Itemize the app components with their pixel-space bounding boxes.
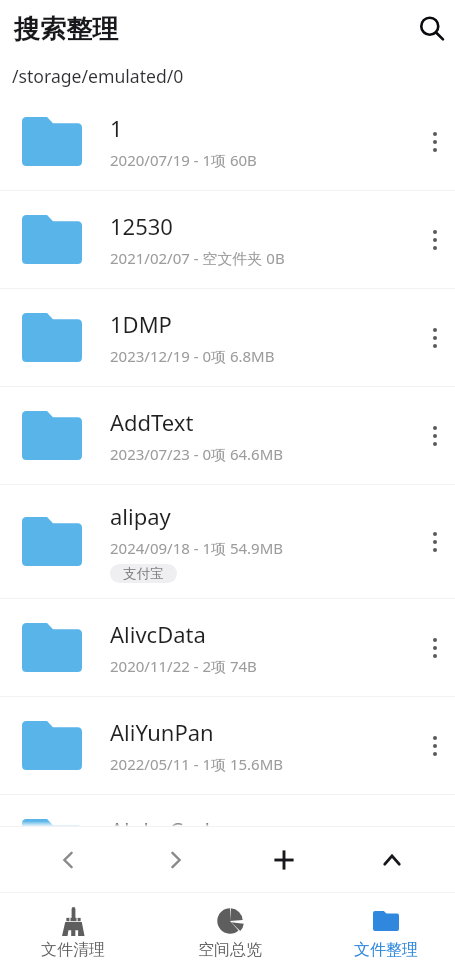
staticText: AddText xyxy=(110,407,194,437)
button[interactable]: 1DMP xyxy=(0,289,455,387)
button[interactable]: More options xyxy=(415,387,455,484)
button[interactable]: alipay xyxy=(0,485,455,599)
button[interactable]: Forward xyxy=(122,827,230,893)
staticText: 12530 xyxy=(110,211,173,241)
button[interactable]: More options xyxy=(415,485,455,598)
staticText: 2020/07/19 - 1项 60B xyxy=(110,150,257,170)
staticText: 文件清理 xyxy=(41,940,105,960)
button[interactable]: More options xyxy=(415,599,455,696)
staticText: 2023/07/23 - 0项 64.6MB xyxy=(110,444,284,464)
staticText: 2024/09/18 - 1项 54.9MB xyxy=(110,538,284,558)
button[interactable]: 1 xyxy=(0,93,455,191)
staticText: 空间总览 xyxy=(198,940,262,960)
button[interactable]: Add xyxy=(230,827,338,893)
staticText: 搜索整理 xyxy=(14,13,118,46)
staticText: 1 xyxy=(110,113,123,143)
button[interactable]: 空间总览 xyxy=(195,893,265,963)
staticText: alipay xyxy=(110,501,171,531)
button[interactable]: More options xyxy=(415,289,455,386)
staticText: AlivcData xyxy=(110,619,206,649)
button[interactable]: More options xyxy=(415,191,455,288)
staticText: 文件整理 xyxy=(354,940,418,960)
staticText: 2021/02/07 - 空文件夹 0B xyxy=(110,248,285,268)
button[interactable]: AlivcData xyxy=(0,599,455,697)
button[interactable]: 文件整理 xyxy=(351,893,421,963)
staticText: 支付宝 xyxy=(123,565,164,582)
button[interactable]: More options xyxy=(415,93,455,190)
button[interactable]: 12530 xyxy=(0,191,455,289)
button[interactable]: 文件清理 xyxy=(38,893,108,963)
staticText: 2020/11/22 - 2项 74B xyxy=(110,656,257,676)
staticText: 2023/12/19 - 0项 6.8MB xyxy=(110,346,275,366)
button[interactable]: Collapse xyxy=(338,827,446,893)
button[interactable]: Search xyxy=(410,7,454,51)
button[interactable]: AddText xyxy=(0,387,455,485)
staticText: /storage/emulated/0 xyxy=(12,64,184,88)
button[interactable]: AliYunPan xyxy=(0,697,455,795)
button[interactable]: More options xyxy=(415,697,455,794)
button[interactable]: AlphaCoders xyxy=(0,795,455,827)
staticText: AlphaCoders xyxy=(110,815,242,827)
button[interactable]: Back xyxy=(13,827,122,893)
staticText: AliYunPan xyxy=(110,717,214,747)
staticText: 2022/05/11 - 1项 15.6MB xyxy=(110,754,284,774)
staticText: 1DMP xyxy=(110,309,172,339)
